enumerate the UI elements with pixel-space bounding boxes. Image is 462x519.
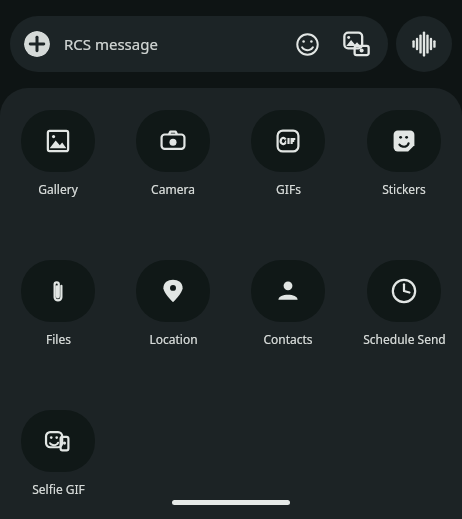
button[interactable]: Stickers — [356, 110, 452, 197]
staticText: Selfie GIF — [32, 481, 85, 497]
button[interactable]: Voice message — [396, 16, 452, 72]
button[interactable]: Add attachment — [10, 16, 388, 72]
button[interactable]: Contacts — [240, 260, 336, 347]
staticText: GIFs — [276, 181, 301, 197]
button[interactable]: Emoji — [290, 27, 324, 61]
staticText: Contacts — [263, 331, 313, 347]
button[interactable]: Add attachment — [24, 31, 50, 57]
button[interactable]: Schedule Send — [356, 260, 452, 347]
button[interactable]: Gallery — [10, 110, 106, 197]
staticText: Gallery — [38, 181, 78, 197]
button[interactable]: Selfie GIF — [10, 410, 106, 497]
button[interactable]: Gallery and camera — [338, 26, 374, 62]
staticText: Camera — [151, 181, 195, 197]
staticText: RCS message — [64, 34, 158, 54]
button[interactable]: Files — [10, 260, 106, 347]
staticText: Files — [46, 331, 71, 347]
button[interactable]: Location — [125, 260, 221, 347]
staticText: Location — [149, 331, 198, 347]
button[interactable]: GIFs — [240, 110, 336, 197]
staticText: Stickers — [382, 181, 426, 197]
staticText: Schedule Send — [363, 331, 446, 347]
button[interactable]: Camera — [125, 110, 221, 197]
